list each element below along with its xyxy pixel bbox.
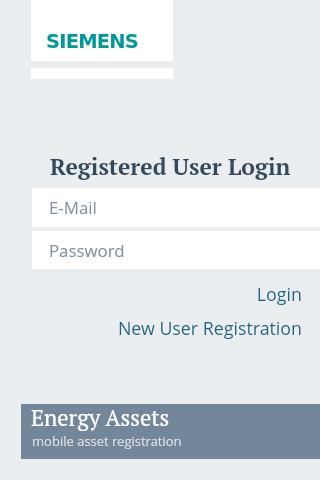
button[interactable]: New User Registration	[99, 310, 320, 346]
button[interactable]: Energy Assets	[21, 404, 320, 459]
button[interactable]: Login	[238, 276, 320, 312]
button[interactable]: Siemens logo	[31, 0, 173, 61]
staticText: E-Mail	[49, 196, 97, 219]
button[interactable]: Password	[32, 231, 320, 269]
staticText: SIEMENS	[46, 30, 139, 53]
staticText: mobile asset registration	[32, 432, 182, 450]
staticText: Login	[256, 282, 302, 306]
staticText: New User Registration	[117, 316, 302, 340]
staticText: Registered User Login	[50, 151, 291, 181]
button[interactable]: E-Mail	[32, 188, 320, 227]
staticText: Energy Assets	[31, 403, 170, 433]
staticText: Password	[49, 239, 125, 262]
